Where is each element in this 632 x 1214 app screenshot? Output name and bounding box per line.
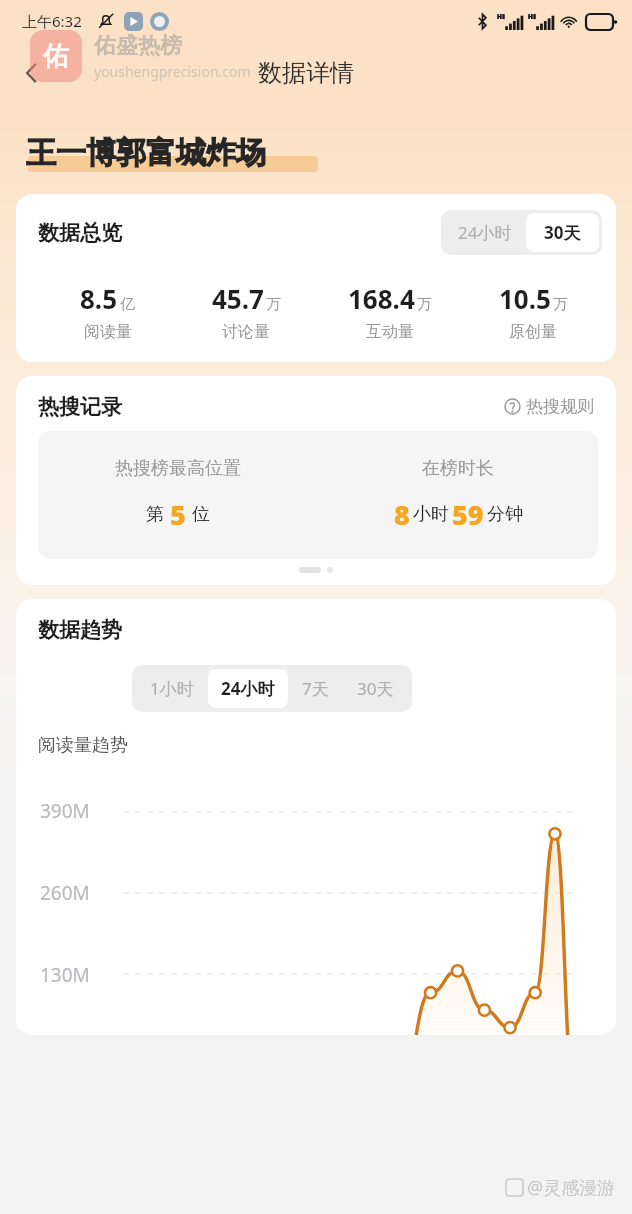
staticText: 位 — [192, 503, 210, 526]
staticText: 30天 — [544, 221, 581, 244]
button[interactable]: 1小时 — [136, 669, 208, 708]
staticText: 阅读量趋势 — [38, 734, 128, 757]
staticText: 万 — [417, 295, 432, 314]
staticText: 热搜记录 — [38, 394, 122, 420]
staticText: 390M — [40, 798, 90, 826]
button[interactable]: 24小时 — [208, 669, 288, 708]
staticText: 8 — [394, 496, 410, 533]
staticText: 原创量 — [509, 322, 557, 342]
staticText: 数据趋势 — [38, 617, 122, 643]
staticText: 互动量 — [366, 322, 414, 342]
staticText: 10.5 — [499, 281, 551, 316]
button[interactable]: 24小时 — [444, 213, 526, 252]
staticText: 在榜时长 — [422, 457, 494, 480]
staticText: 上午6:32 — [22, 11, 82, 31]
staticText: 王一博郭富城炸场 — [26, 134, 266, 172]
staticText: 万 — [266, 295, 281, 314]
staticText: 8.5 — [80, 281, 118, 316]
staticText: 7天 — [302, 677, 329, 700]
staticText: 万 — [553, 295, 568, 314]
button[interactable]: 返回 — [8, 49, 56, 97]
staticText: 30天 — [357, 677, 394, 700]
staticText: 阅读量 — [84, 322, 132, 342]
staticText: 数据详情 — [258, 58, 354, 88]
staticText: 24小时 — [458, 221, 512, 244]
staticText: youshengprecision.com — [94, 62, 251, 81]
staticText: 1小时 — [150, 677, 194, 700]
staticText: 热搜规则 — [526, 396, 594, 417]
staticText: 168.4 — [348, 281, 415, 316]
staticText: 小时 — [413, 503, 449, 526]
staticText: 分钟 — [487, 503, 523, 526]
staticText: 讨论量 — [222, 322, 270, 342]
staticText: 佑盛热榜 — [94, 32, 182, 60]
button[interactable]: 30天 — [526, 213, 599, 252]
staticText: 佑 — [43, 40, 69, 73]
staticText: 数据总览 — [38, 220, 122, 246]
staticText: 24小时 — [221, 677, 275, 700]
staticText: 热搜榜最高位置 — [115, 457, 241, 480]
staticText: 45.7 — [212, 281, 264, 316]
staticText: @灵感漫游 — [527, 1175, 616, 1200]
staticText: 亿 — [120, 295, 135, 314]
staticText: 130M — [40, 962, 90, 990]
staticText: 5 — [170, 496, 186, 533]
staticText: 第 — [146, 503, 164, 526]
staticText: 59 — [452, 496, 484, 533]
button[interactable]: 30天 — [343, 669, 408, 708]
staticText: 260M — [40, 880, 90, 908]
button[interactable]: 7天 — [288, 669, 343, 708]
button[interactable]: 热搜规则 — [500, 392, 598, 421]
